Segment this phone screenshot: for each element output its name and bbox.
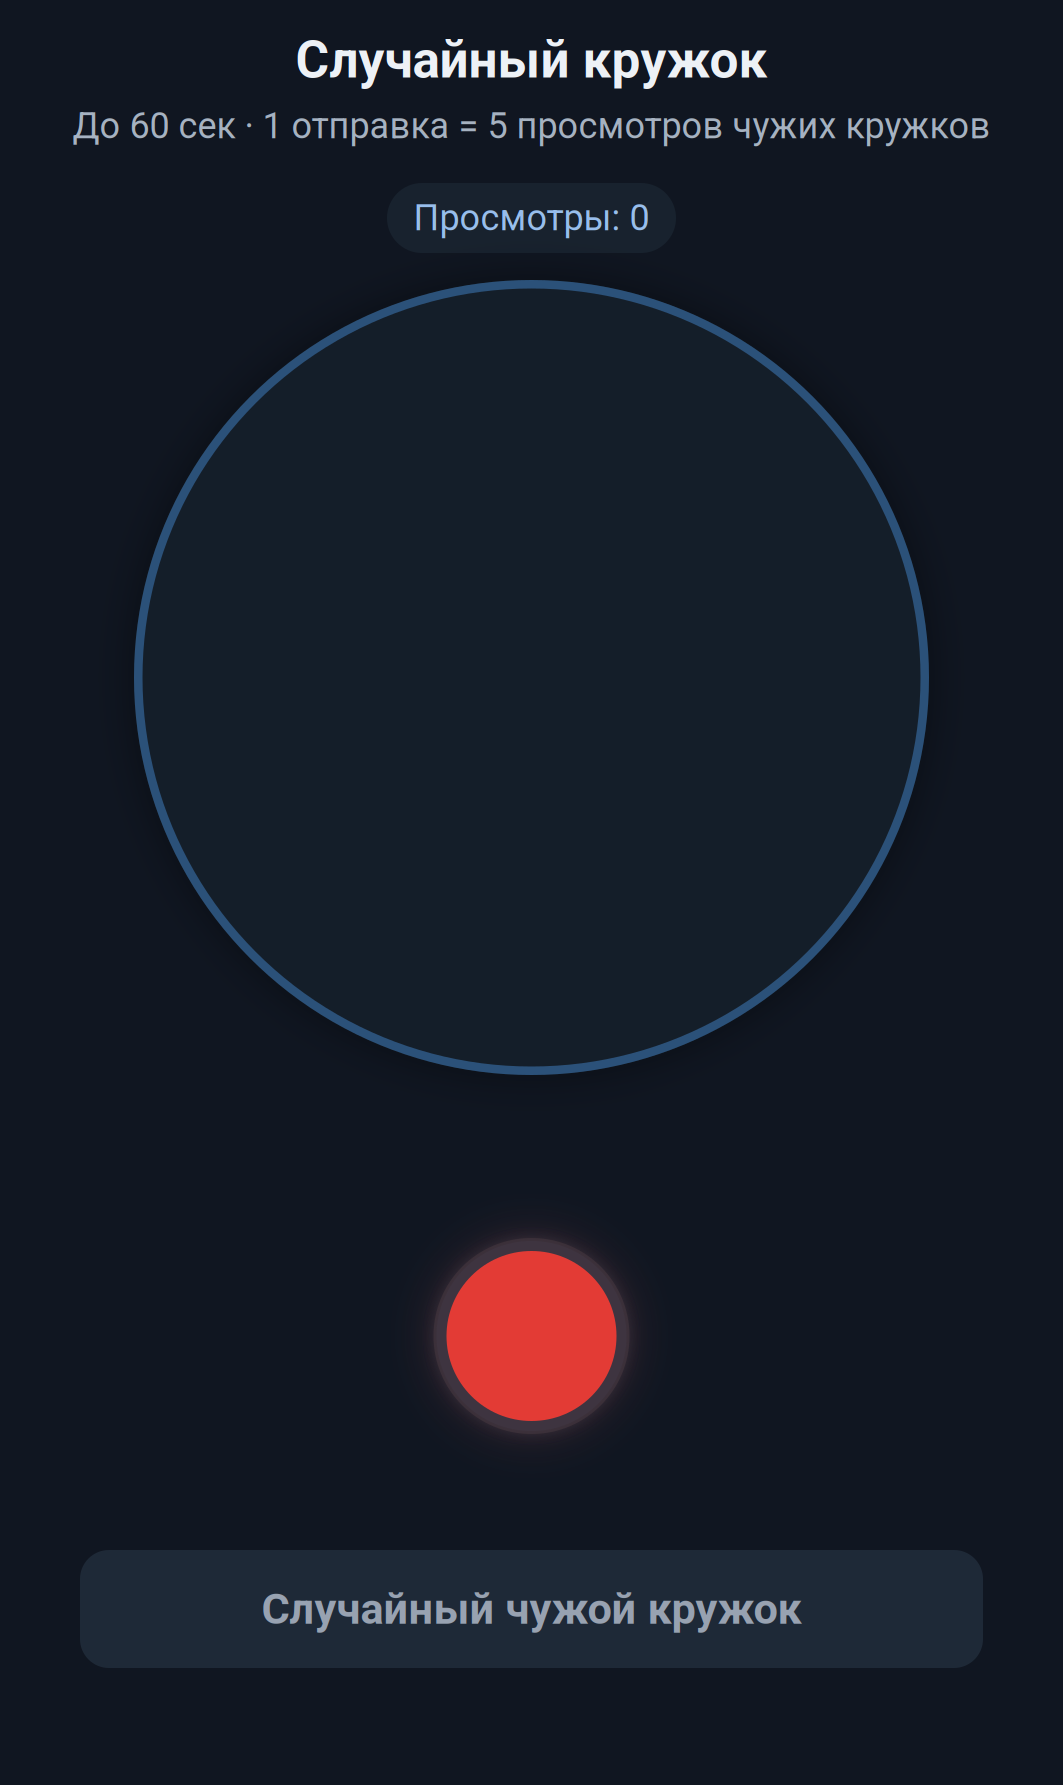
staticText: До 60 сек · 1 отправка = 5 просмотров чу… [72,105,990,147]
staticText: Случайный чужой кружок [261,1584,801,1634]
button[interactable]: Случайный чужой кружок [80,1550,983,1668]
staticText: Случайный кружок [295,30,767,90]
staticText: Просмотры: 0 [413,197,649,239]
button[interactable]: Записать кружок [428,1233,634,1439]
